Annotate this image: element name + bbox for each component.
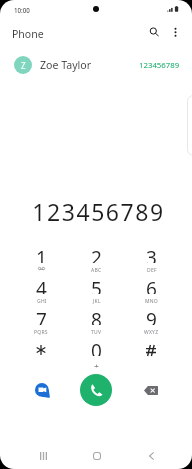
staticText: PQRS — [34, 329, 48, 336]
button[interactable]: 6 — [124, 276, 178, 306]
staticText: 3 — [146, 245, 157, 263]
staticText: 7 — [36, 307, 47, 325]
staticText: Z — [21, 60, 26, 71]
staticText: Zoe Taylor — [40, 58, 92, 72]
button[interactable] — [124, 338, 178, 368]
button[interactable]: 3 — [124, 245, 178, 275]
button[interactable]: 9 — [124, 307, 178, 337]
staticText: 5 — [91, 276, 102, 294]
button[interactable]: 4 — [14, 276, 68, 306]
button[interactable]: Video call — [22, 374, 62, 406]
staticText: TUV — [91, 329, 102, 336]
staticText: 2 — [91, 245, 102, 263]
button[interactable]: Search — [142, 20, 166, 44]
staticText: 9 — [146, 307, 157, 325]
button[interactable]: 8 — [69, 307, 123, 337]
button[interactable]: More options — [163, 20, 187, 44]
button[interactable]: Back — [131, 443, 171, 468]
staticText: 6 — [146, 276, 157, 294]
staticText: ABC — [91, 267, 102, 274]
staticText: DEF — [147, 267, 157, 274]
button[interactable]: Z — [0, 53, 192, 77]
staticText: WXYZ — [144, 329, 159, 336]
button[interactable]: Call — [75, 370, 117, 410]
staticText: 123456789 — [32, 196, 165, 227]
button[interactable]: 1 — [14, 245, 68, 275]
button[interactable]: 2 — [69, 245, 123, 275]
button[interactable]: 5 — [69, 276, 123, 306]
button[interactable]: Recents — [23, 443, 63, 468]
staticText: 123456789 — [139, 60, 180, 71]
staticText: JKL — [93, 298, 101, 305]
button[interactable]: Home — [77, 443, 117, 468]
staticText: 8 — [91, 307, 102, 325]
staticText: 1 — [36, 245, 47, 263]
staticText: GHI — [37, 298, 47, 305]
staticText: 0 — [91, 338, 102, 356]
button[interactable]: 7 — [14, 307, 68, 337]
staticText: Phone — [12, 27, 44, 41]
staticText: MNO — [145, 298, 158, 305]
button[interactable]: 0 — [69, 338, 123, 368]
button[interactable]: Delete — [131, 374, 171, 406]
staticText: 4 — [36, 276, 47, 294]
button[interactable] — [14, 338, 68, 368]
staticText: 10:00 — [14, 6, 30, 14]
